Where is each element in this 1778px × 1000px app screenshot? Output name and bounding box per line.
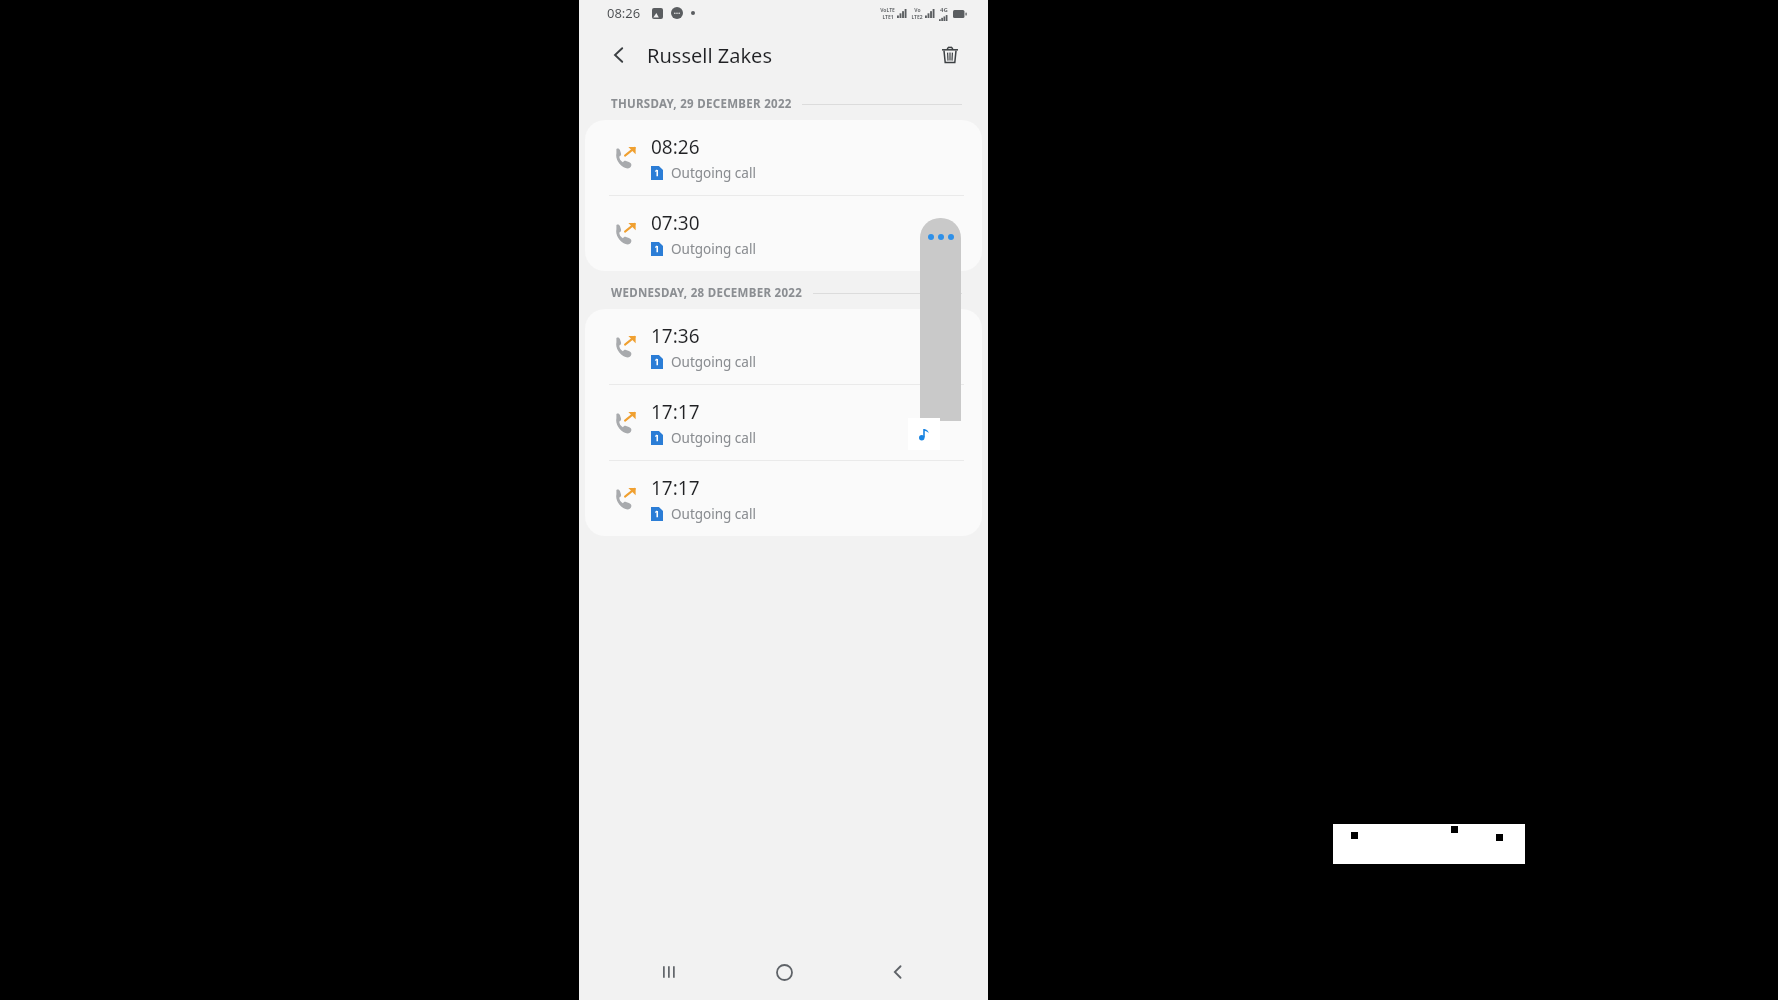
staticText: VoLTE <box>880 7 895 14</box>
staticText: 17:17 <box>651 475 700 501</box>
staticText: Vo <box>914 7 921 14</box>
staticText: LTE1 <box>882 14 894 21</box>
button[interactable]: 08:26 <box>585 120 982 195</box>
button[interactable]: Home <box>760 948 808 996</box>
staticText: Outgoing call <box>671 164 756 182</box>
button[interactable]: Recent apps <box>645 948 693 996</box>
staticText: WEDNESDAY, 28 DECEMBER 2022 <box>611 285 803 301</box>
staticText: 4G <box>940 6 948 14</box>
staticText: 08:26 <box>651 134 700 160</box>
staticText: 17:36 <box>651 323 700 349</box>
staticText: 17:17 <box>651 399 700 425</box>
staticText: Outgoing call <box>671 505 756 523</box>
button[interactable]: Music <box>908 418 940 450</box>
button[interactable]: Back <box>599 35 639 75</box>
staticText: LTE2 <box>911 14 923 21</box>
staticText: Outgoing call <box>671 429 756 447</box>
button[interactable]: Back <box>874 948 922 996</box>
staticText: Outgoing call <box>671 240 756 258</box>
staticText: 08:26 <box>607 4 641 22</box>
button[interactable]: 17:17 <box>585 385 982 460</box>
staticText: 07:30 <box>651 210 700 236</box>
staticText: Outgoing call <box>671 353 756 371</box>
button[interactable]: Scroll handle <box>920 218 961 421</box>
button[interactable]: Delete <box>930 35 970 75</box>
staticText: Russell Zakes <box>647 42 772 69</box>
button[interactable]: 07:30 <box>585 196 982 271</box>
staticText: THURSDAY, 29 DECEMBER 2022 <box>611 96 792 112</box>
button[interactable]: 17:17 <box>585 461 982 536</box>
button[interactable]: 17:36 <box>585 309 982 384</box>
